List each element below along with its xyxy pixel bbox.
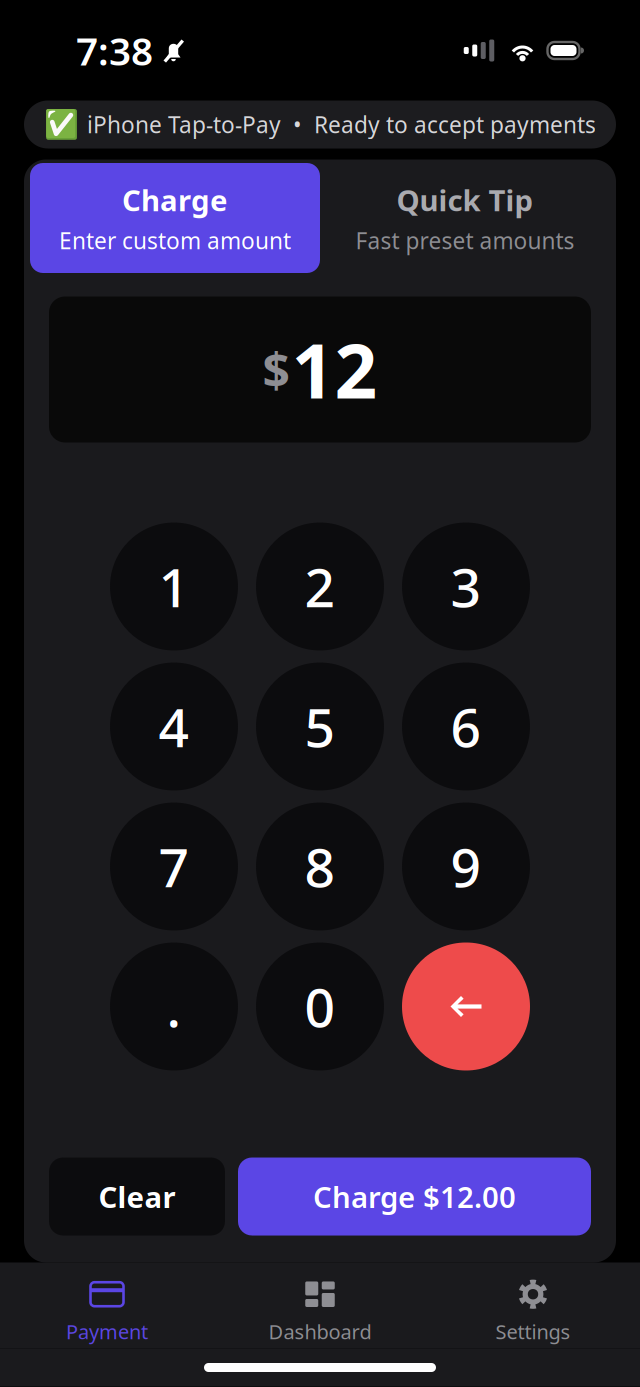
- button[interactable]: 6: [402, 662, 530, 790]
- staticText: Payment: [66, 1318, 148, 1345]
- staticText: 4: [158, 691, 189, 762]
- staticText: 5: [304, 691, 335, 762]
- staticText: ✅: [44, 108, 79, 140]
- button[interactable]: 1: [110, 522, 238, 650]
- button[interactable]: Charge: [30, 163, 320, 273]
- button[interactable]: Quick Tip: [320, 163, 610, 273]
- staticText: Charge $12.00: [313, 1177, 516, 1216]
- button[interactable]: Clear: [49, 1157, 225, 1235]
- staticText: 7: [158, 831, 189, 902]
- staticText: Clear: [98, 1177, 175, 1216]
- staticText: Charge: [122, 180, 228, 219]
- button[interactable]: Payment: [0, 1262, 213, 1348]
- staticText: Dashboard: [268, 1318, 371, 1345]
- staticText: Quick Tip: [396, 180, 533, 219]
- button[interactable]: 8: [256, 802, 384, 930]
- staticText: Fast preset amounts: [355, 225, 574, 255]
- staticText: Settings: [495, 1318, 570, 1345]
- staticText: 8: [304, 831, 335, 902]
- button[interactable]: Delete: [402, 942, 530, 1070]
- button[interactable]: .: [110, 942, 238, 1070]
- staticText: Enter custom amount: [59, 225, 291, 255]
- staticText: 7:38: [76, 25, 153, 76]
- staticText: 6: [450, 691, 481, 762]
- button[interactable]: Settings: [426, 1262, 639, 1348]
- staticText: .: [166, 971, 181, 1042]
- staticText: 9: [450, 831, 481, 902]
- button[interactable]: 2: [256, 522, 384, 650]
- button[interactable]: Charge $12.00: [238, 1157, 591, 1235]
- staticText: 12: [291, 320, 377, 419]
- button[interactable]: 5: [256, 662, 384, 790]
- staticText: 2: [304, 551, 335, 622]
- button[interactable]: 9: [402, 802, 530, 930]
- staticText: $: [262, 338, 289, 401]
- button[interactable]: Dashboard: [213, 1262, 426, 1348]
- staticText: iPhone Tap-to-Pay • Ready to accept paym…: [87, 109, 596, 139]
- staticText: 1: [158, 551, 189, 622]
- staticText: 0: [304, 971, 335, 1042]
- button[interactable]: 7: [110, 802, 238, 930]
- button[interactable]: 3: [402, 522, 530, 650]
- button[interactable]: 0: [256, 942, 384, 1070]
- button[interactable]: 4: [110, 662, 238, 790]
- staticText: 3: [450, 551, 481, 622]
